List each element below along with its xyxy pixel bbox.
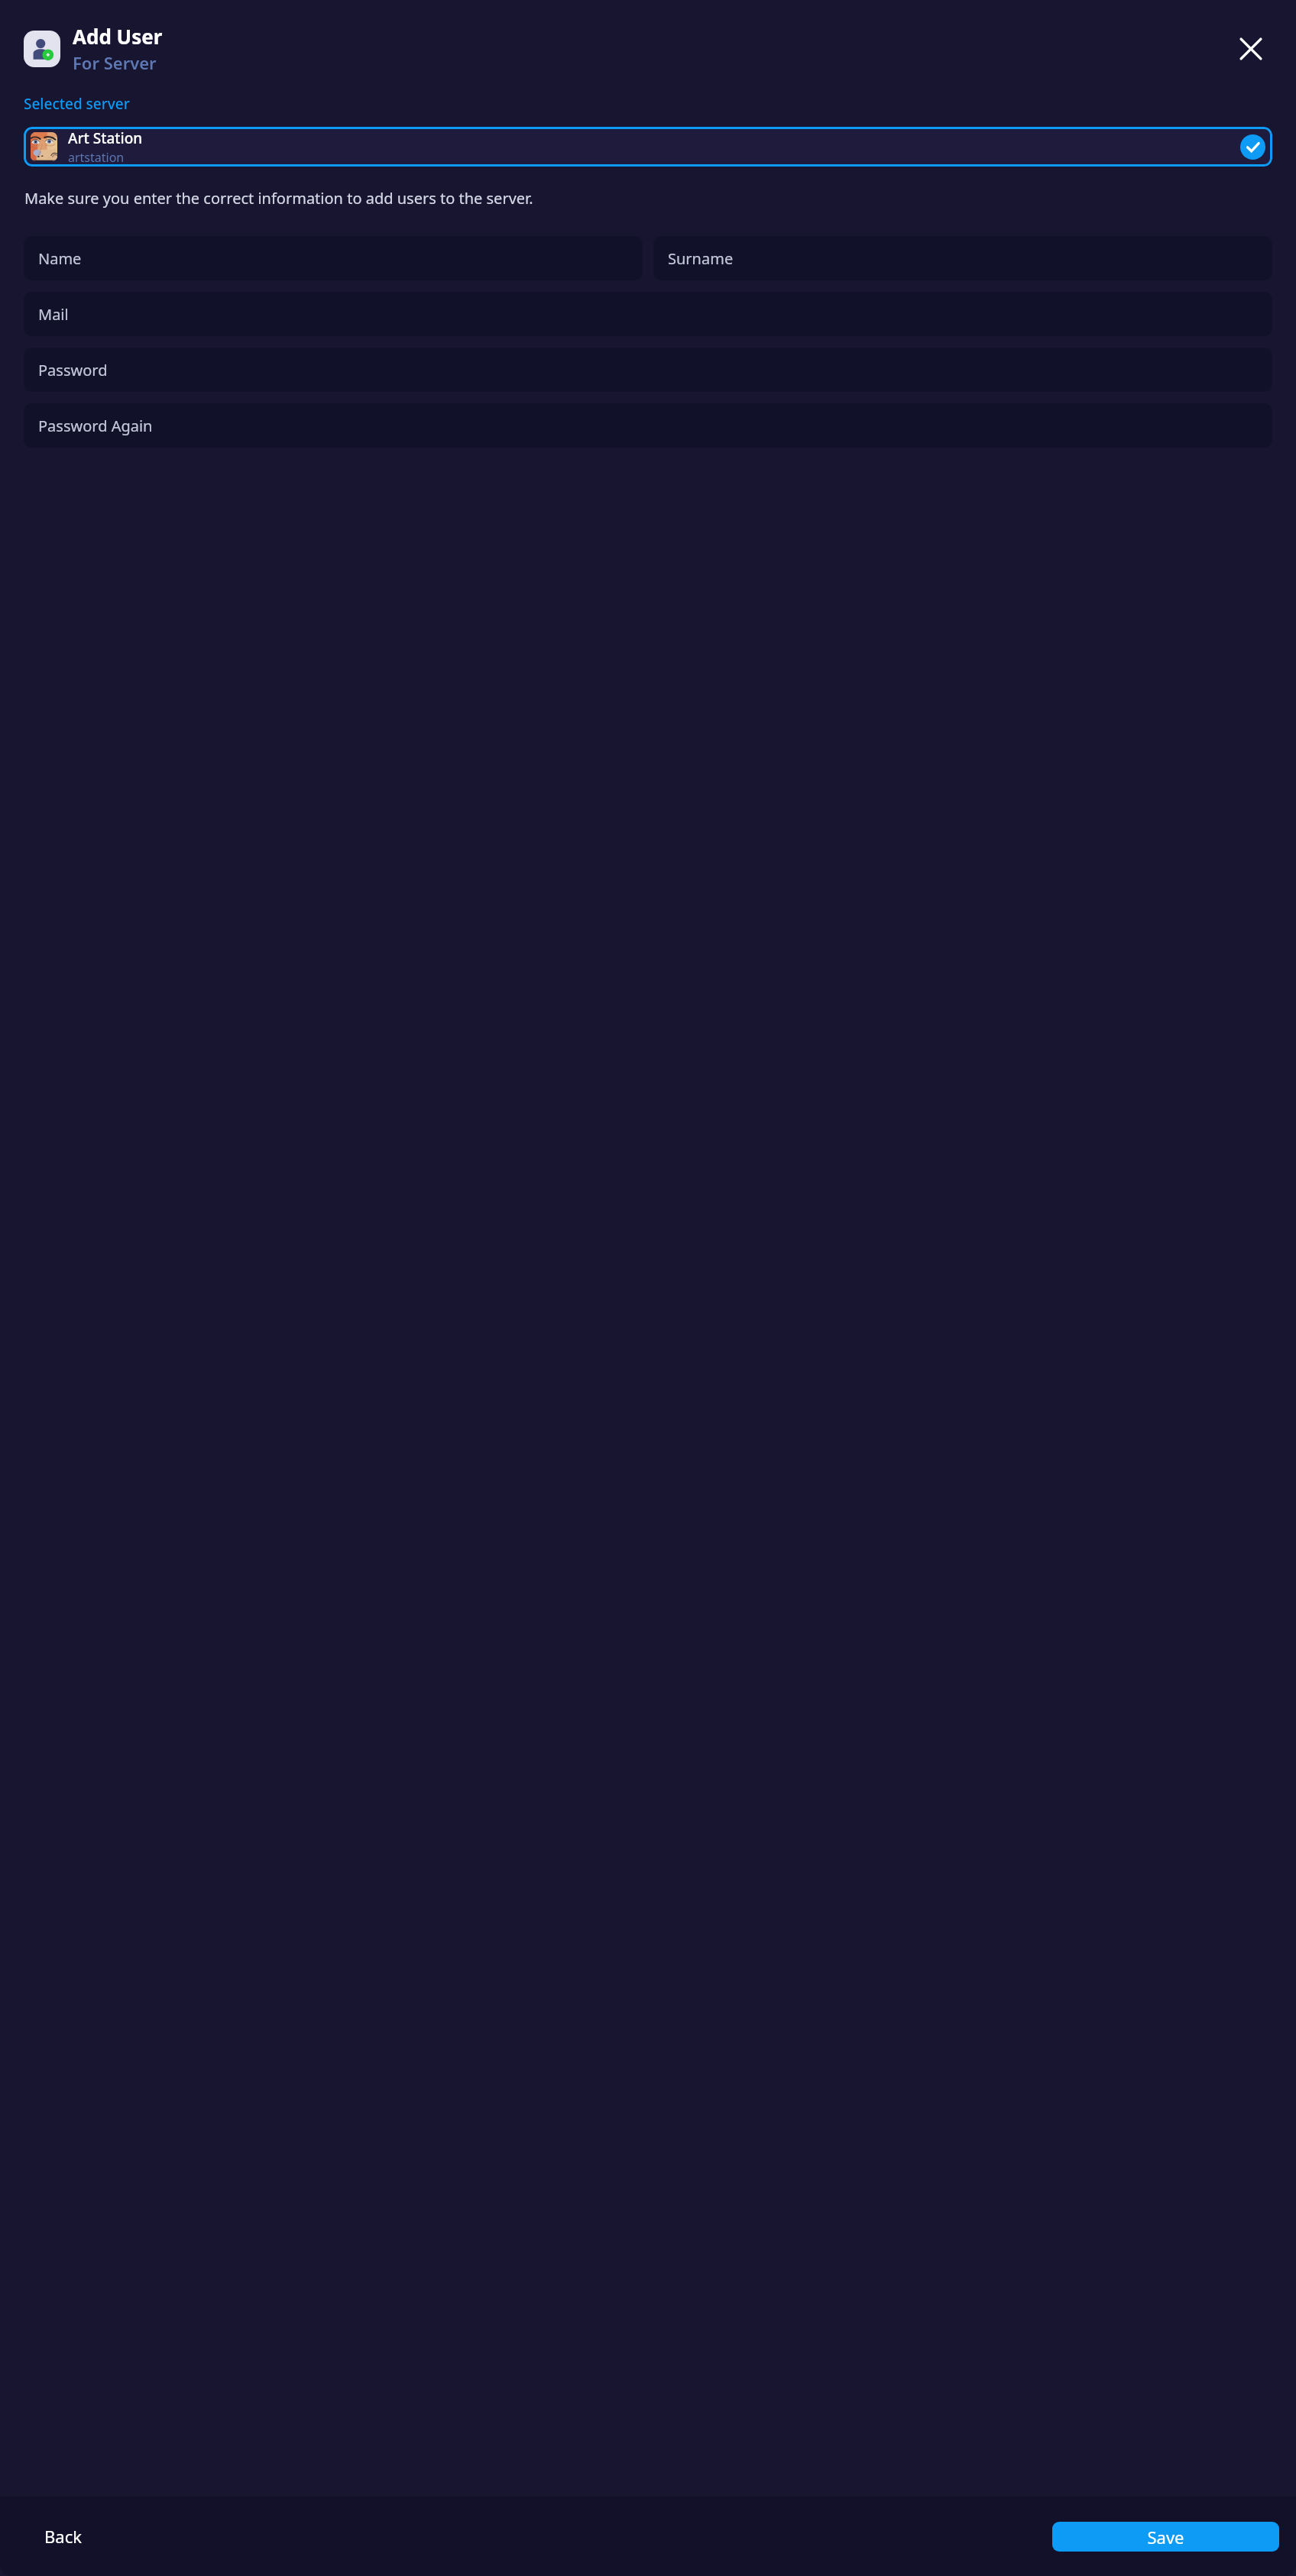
staticText: Make sure you enter the correct informat… bbox=[24, 188, 533, 209]
staticText: Mail bbox=[38, 304, 69, 325]
button[interactable]: Back bbox=[17, 2514, 109, 2558]
staticText: For Server bbox=[73, 51, 157, 74]
button[interactable]: Art Station bbox=[24, 127, 1272, 167]
button[interactable]: Mail bbox=[24, 292, 1272, 336]
staticText: artstation bbox=[68, 149, 125, 166]
button[interactable]: Name bbox=[24, 236, 643, 280]
staticText: Add User bbox=[73, 23, 163, 50]
staticText: Art Station bbox=[68, 128, 143, 148]
button[interactable]: Password bbox=[24, 348, 1272, 392]
staticText: Selected server bbox=[24, 94, 130, 114]
staticText: Save bbox=[1147, 2526, 1184, 2548]
button[interactable]: Save bbox=[1052, 2522, 1279, 2552]
staticText: Password bbox=[38, 360, 108, 380]
staticText: Password Again bbox=[38, 416, 153, 436]
staticText: Surname bbox=[668, 248, 734, 269]
staticText: Back bbox=[44, 2525, 82, 2548]
button[interactable]: Surname bbox=[653, 236, 1272, 280]
staticText: Name bbox=[38, 248, 82, 269]
button[interactable]: Close bbox=[1230, 28, 1272, 70]
button[interactable]: Password Again bbox=[24, 403, 1272, 448]
